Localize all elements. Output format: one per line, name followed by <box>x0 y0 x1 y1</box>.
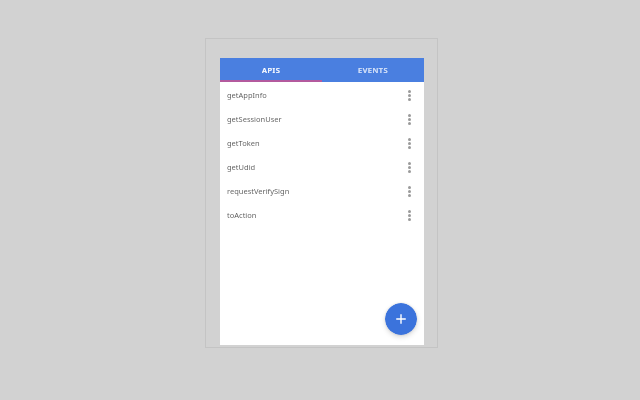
button[interactable]: getSessionUser <box>220 107 424 131</box>
staticText: getAppInfo <box>227 90 402 100</box>
staticText: toAction <box>227 210 402 220</box>
button[interactable]: Add <box>385 303 417 335</box>
button[interactable]: getToken <box>220 131 424 155</box>
button[interactable]: More options for getSessionUser <box>402 109 416 129</box>
staticText: APIS <box>262 65 281 75</box>
button[interactable]: getAppInfo <box>220 83 424 107</box>
button[interactable]: toAction <box>220 203 424 227</box>
button[interactable]: More options for getUdid <box>402 157 416 177</box>
staticText: getSessionUser <box>227 114 402 124</box>
button[interactable]: getUdid <box>220 155 424 179</box>
button[interactable]: More options for getAppInfo <box>402 85 416 105</box>
button[interactable]: More options for getToken <box>402 133 416 153</box>
staticText: EVENTS <box>358 65 389 75</box>
staticText: getUdid <box>227 162 402 172</box>
button[interactable]: More options for toAction <box>402 205 416 225</box>
button[interactable]: EVENTS <box>322 58 424 82</box>
staticText: getToken <box>227 138 402 148</box>
button[interactable]: requestVerifySign <box>220 179 424 203</box>
button[interactable]: More options for requestVerifySign <box>402 181 416 201</box>
staticText: requestVerifySign <box>227 186 402 196</box>
button[interactable]: APIS <box>220 58 322 82</box>
